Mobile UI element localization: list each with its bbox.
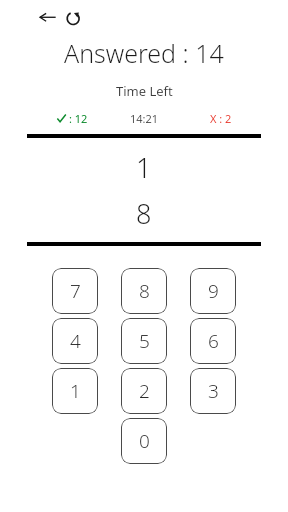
- staticText: 7: [70, 278, 81, 304]
- staticText: X : 2: [210, 111, 232, 126]
- button[interactable]: 3: [190, 368, 236, 414]
- staticText: Time Left: [116, 82, 173, 100]
- button[interactable]: 9: [190, 268, 236, 314]
- staticText: 14:21: [130, 111, 159, 126]
- staticText: : 12: [69, 111, 88, 126]
- staticText: 8: [139, 278, 150, 304]
- staticText: 9: [208, 278, 219, 304]
- button[interactable]: 1: [52, 368, 98, 414]
- staticText: 5: [139, 328, 150, 354]
- button[interactable]: 2: [121, 368, 167, 414]
- button[interactable]: 8: [121, 268, 167, 314]
- staticText: 3: [208, 378, 219, 404]
- button[interactable]: 7: [52, 268, 98, 314]
- staticText: Answered : 14: [64, 36, 224, 70]
- staticText: 8: [136, 195, 152, 232]
- staticText: 4: [70, 328, 81, 354]
- staticText: 1: [136, 149, 152, 186]
- staticText: 1: [70, 378, 81, 404]
- button[interactable]: Restart: [62, 6, 84, 28]
- staticText: 6: [208, 328, 219, 354]
- button[interactable]: 4: [52, 318, 98, 364]
- staticText: 2: [139, 378, 150, 404]
- button[interactable]: 5: [121, 318, 167, 364]
- button[interactable]: 6: [190, 318, 236, 364]
- button[interactable]: 0: [121, 418, 167, 464]
- button[interactable]: Back: [36, 6, 58, 28]
- staticText: 0: [139, 428, 150, 454]
